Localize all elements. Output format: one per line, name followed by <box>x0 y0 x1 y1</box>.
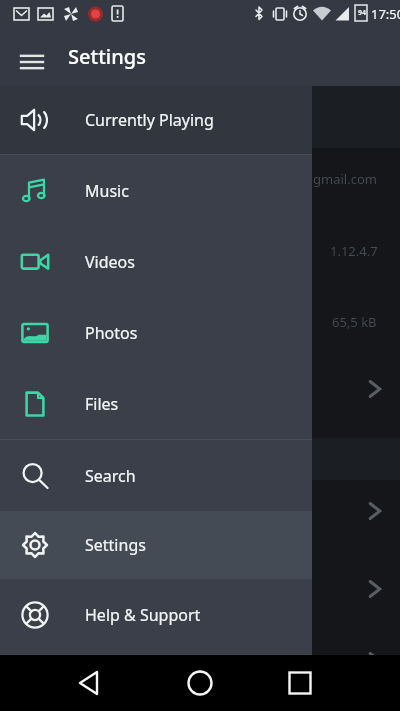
button[interactable]: Music <box>0 155 312 226</box>
staticText: Videos <box>85 251 135 273</box>
button[interactable]: Files <box>0 368 312 439</box>
button[interactable]: Settings <box>0 511 312 579</box>
button[interactable]: Search <box>0 440 312 511</box>
staticText: Settings <box>85 534 146 556</box>
staticText: Currently Playing <box>85 109 214 131</box>
staticText: Settings <box>68 43 146 70</box>
button[interactable]: Currently Playing <box>0 86 312 154</box>
staticText: Music <box>85 180 129 202</box>
button[interactable]: Photos <box>0 297 312 368</box>
button[interactable]: Help & Support <box>0 579 312 650</box>
button[interactable]: Back <box>68 655 400 711</box>
staticText: 17:50 <box>371 5 400 23</box>
button[interactable]: Home <box>172 655 228 711</box>
staticText: 65,5 kB <box>332 313 377 331</box>
staticText: gmail.com <box>313 170 377 188</box>
staticText: Photos <box>85 322 138 344</box>
button[interactable]: Recent apps <box>272 655 328 711</box>
staticText: 94 <box>356 8 368 18</box>
staticText: Help & Support <box>85 604 201 626</box>
button[interactable]: Open navigation drawer <box>8 38 56 86</box>
staticText: Files <box>85 393 119 415</box>
staticText: Search <box>85 465 136 487</box>
button[interactable]: Videos <box>0 226 312 297</box>
staticText: 1.12.4.7 <box>330 242 378 260</box>
